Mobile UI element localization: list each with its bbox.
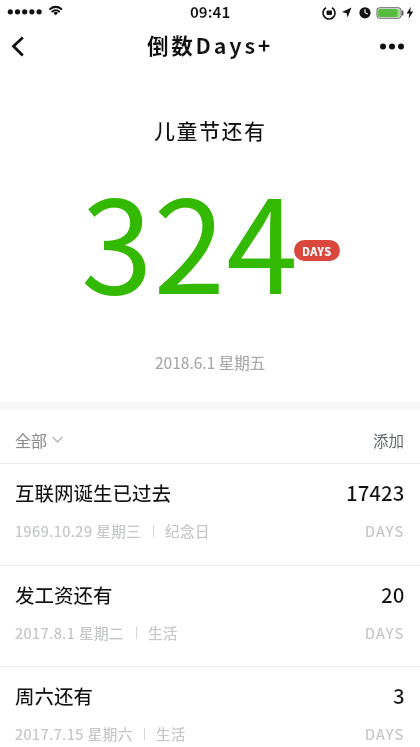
button[interactable]: 全部	[15, 428, 63, 451]
staticText: 互联网诞生已过去	[15, 478, 172, 506]
staticText: 1969.10.29 星期三	[15, 520, 142, 541]
button[interactable]: 周六还有	[0, 666, 420, 744]
button[interactable]: 发工资还有	[0, 565, 420, 643]
staticText: DAYS	[365, 723, 405, 744]
staticText: 全部	[15, 428, 48, 451]
staticText: 儿童节还有	[154, 115, 267, 145]
button[interactable]: 互联网诞生已过去	[0, 463, 420, 541]
button[interactable]	[0, 25, 40, 67]
button[interactable]: 添加	[373, 429, 405, 451]
staticText: 3	[393, 680, 405, 710]
staticText: ｜	[133, 725, 156, 742]
staticText: 发工资还有	[15, 580, 113, 608]
staticText: ｜	[142, 522, 165, 539]
staticText: DAYS	[365, 622, 405, 643]
staticText: 2017.7.15 星期六	[15, 723, 133, 744]
staticText: DAYS	[365, 520, 405, 541]
staticText: 倒数Days+	[147, 29, 274, 60]
staticText: 20	[381, 579, 405, 609]
staticText: ｜	[125, 624, 148, 641]
staticText: 2017.8.1 星期二	[15, 622, 125, 643]
staticText: 17423	[346, 477, 405, 507]
staticText: 324	[81, 144, 299, 331]
staticText: 纪念日	[165, 520, 210, 541]
staticText: 周六还有	[15, 681, 94, 709]
button[interactable]	[372, 25, 420, 67]
staticText: 生活	[148, 622, 178, 643]
staticText: 2018.6.1 星期五	[155, 351, 266, 373]
staticText: DAYS	[302, 243, 332, 259]
staticText: 添加	[373, 429, 405, 451]
staticText: 09:41	[190, 1, 231, 23]
staticText: 生活	[156, 723, 186, 744]
